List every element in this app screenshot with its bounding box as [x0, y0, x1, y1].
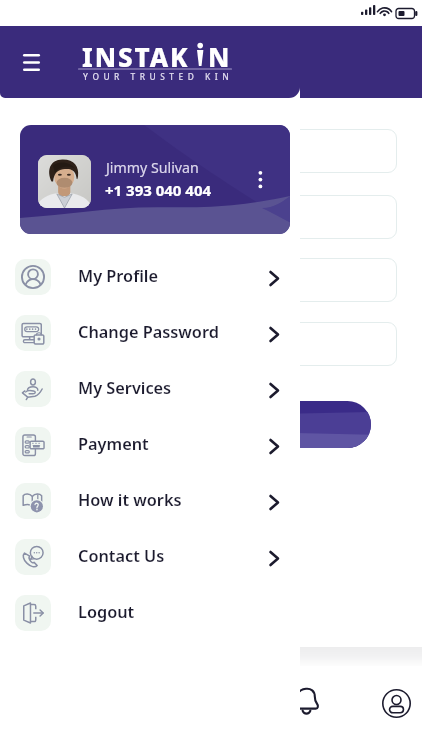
button[interactable]: [250, 129, 397, 173]
button[interactable]: Profile: [351, 666, 422, 740]
button[interactable]: Logout: [0, 585, 300, 641]
button[interactable]: Contact Us: [0, 529, 300, 585]
button[interactable]: Change Password: [0, 305, 300, 361]
button[interactable]: My Profile: [0, 249, 300, 305]
staticText: Contact Us: [78, 545, 165, 567]
button[interactable]: Payment: [0, 417, 300, 473]
staticText: INSTAK: [82, 39, 190, 74]
button[interactable]: [250, 258, 397, 302]
staticText: +1 393 040 404: [105, 180, 212, 200]
staticText: My Services: [78, 377, 172, 399]
button[interactable]: Jimmy Sulivan: [20, 125, 290, 234]
staticText: Payment: [78, 433, 149, 455]
button[interactable]: [250, 195, 397, 239]
button[interactable]: Open menu: [17, 46, 47, 74]
staticText: Jimmy Sulivan: [106, 158, 199, 177]
button[interactable]: [250, 322, 397, 366]
staticText: Y O U R T R U S T E D K I N: [83, 71, 230, 82]
staticText: How it works: [78, 489, 182, 511]
button[interactable]: Notifications: [261, 666, 351, 740]
staticText: My Profile: [78, 265, 158, 287]
button[interactable]: [230, 401, 371, 448]
button[interactable]: My Services: [0, 361, 300, 417]
staticText: Logout: [78, 601, 135, 623]
button[interactable]: More options: [246, 159, 275, 199]
button[interactable]: How it works: [0, 473, 300, 529]
staticText: N: [208, 39, 232, 74]
staticText: Change Password: [78, 321, 219, 343]
